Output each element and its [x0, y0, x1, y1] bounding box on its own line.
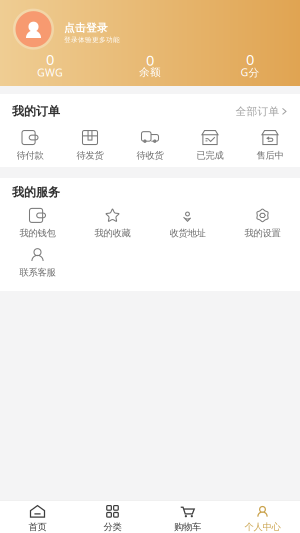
staticText: 0: [46, 50, 54, 69]
staticText: 余额: [139, 66, 161, 79]
staticText: 联系客服: [19, 266, 55, 278]
button[interactable]: 首页: [0, 506, 75, 533]
staticText: 待收货: [136, 149, 163, 161]
staticText: 收货地址: [169, 227, 205, 239]
staticText: 我的订单: [12, 104, 60, 119]
button[interactable]: 待发货: [60, 130, 120, 161]
button[interactable]: 待收货: [120, 130, 180, 161]
button[interactable]: 0: [100, 50, 200, 79]
staticText: 首页: [28, 521, 46, 533]
staticText: 个人中心: [244, 521, 280, 533]
staticText: 分类: [103, 521, 121, 533]
staticText: 待发货: [76, 149, 103, 161]
button[interactable]: 售后中: [240, 130, 300, 161]
staticText: 0: [246, 50, 254, 69]
button[interactable]: 联系客服: [0, 247, 75, 278]
staticText: GWG: [37, 65, 63, 79]
staticText: 0: [146, 50, 154, 70]
staticText: 已完成: [196, 149, 223, 161]
button[interactable]: 个人中心: [225, 506, 300, 533]
staticText: 待付款: [16, 149, 43, 161]
staticText: 我的服务: [12, 185, 60, 200]
button[interactable]: 0: [200, 50, 300, 79]
button[interactable]: 已完成: [180, 130, 240, 161]
button[interactable]: 待付款: [0, 130, 60, 161]
staticText: 登录体验更多功能: [64, 36, 120, 44]
staticText: 我的设置: [244, 227, 280, 239]
button[interactable]: 全部订单: [235, 105, 286, 118]
staticText: G分: [240, 65, 259, 79]
button[interactable]: 我的收藏: [75, 208, 150, 239]
staticText: 购物车: [174, 521, 201, 533]
button[interactable]: 收货地址: [150, 208, 225, 239]
button[interactable]: 分类: [75, 506, 150, 533]
button[interactable]: 我的设置: [225, 208, 300, 239]
staticText: 全部订单: [235, 105, 279, 118]
staticText: 点击登录: [64, 21, 108, 35]
button[interactable]: 购物车: [150, 506, 225, 533]
staticText: 售后中: [256, 149, 283, 161]
staticText: 我的收藏: [94, 227, 130, 239]
button[interactable]: 我的钱包: [0, 208, 75, 239]
staticText: 我的钱包: [19, 227, 55, 239]
button[interactable]: 0: [0, 50, 100, 79]
